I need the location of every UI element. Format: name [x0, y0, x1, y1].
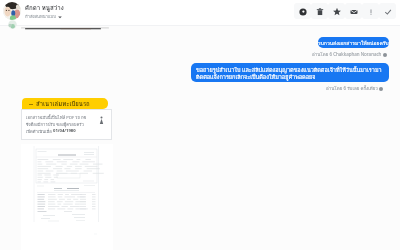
- staticText: อ่านโดย 6 รับเลย ครั้งเดียว: [326, 85, 378, 92]
- button[interactable]: Archive: [294, 3, 311, 19]
- button[interactable]: Mark unread: [345, 3, 362, 19]
- staticText: เปิดดำเนินเมื่อ: [26, 128, 53, 135]
- staticText: เอกสารฉบับนี้เป็นไฟล์ PDF รถ กข จึงต้องม…: [26, 114, 87, 128]
- staticText: 01/04/1980: [53, 128, 76, 134]
- staticText: กำลังสนทนาแบบ: [25, 13, 56, 20]
- button[interactable]: Star: [328, 3, 345, 19]
- button[interactable]: สำเนาเล่มทะเบียนรถ: [22, 98, 108, 109]
- button[interactable]: เอกสารฉบับนี้เป็นไฟล์ PDF รถ กข จึงต้องม…: [21, 109, 112, 140]
- staticText: ศักดา หนูสว่าง: [25, 3, 64, 13]
- staticText: สำเนาเล่มทะเบียนรถ: [36, 99, 90, 109]
- staticText: อ่านโดย 6 Chakkaphan Noranach: [312, 51, 382, 58]
- button[interactable]: รบกวนส่งเอกสารมาให้หน่อยครับ: [318, 37, 389, 48]
- staticText: รบกวนส่งเอกสารมาให้หน่อยครับ: [318, 39, 389, 47]
- button[interactable]: More options: [362, 3, 379, 19]
- button[interactable]: Mark done: [379, 3, 396, 19]
- button[interactable]: Delete: [311, 3, 328, 19]
- button[interactable]: Document preview: [21, 144, 113, 250]
- staticText: ขอถ่ายรูปสำเนาใบ และสลิปแสดงอนุญาตของแนว…: [196, 66, 382, 81]
- button[interactable]: ขอถ่ายรูปสำเนาใบ และสลิปแสดงอนุญาตของแนว…: [191, 63, 389, 82]
